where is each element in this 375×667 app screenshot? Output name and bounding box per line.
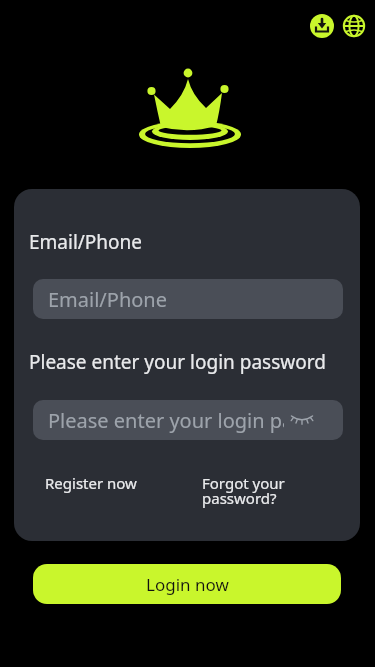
- button[interactable]: Forgot your password?: [202, 473, 306, 509]
- staticText: Please enter your login password: [48, 407, 284, 434]
- staticText: Login now: [146, 573, 229, 596]
- staticText: Register now: [45, 473, 137, 493]
- staticText: Email/Phone: [29, 229, 143, 255]
- button[interactable]: [342, 14, 366, 38]
- button[interactable]: [310, 14, 334, 38]
- staticText: Please enter your login password: [29, 349, 326, 375]
- staticText: Email/Phone: [48, 286, 167, 313]
- button[interactable]: Register now: [45, 473, 137, 493]
- button[interactable]: Email/Phone: [33, 279, 343, 319]
- button[interactable]: Please enter your login password: [33, 400, 343, 440]
- staticText: Forgot your password?: [202, 473, 285, 509]
- button[interactable]: Login now: [33, 564, 341, 604]
